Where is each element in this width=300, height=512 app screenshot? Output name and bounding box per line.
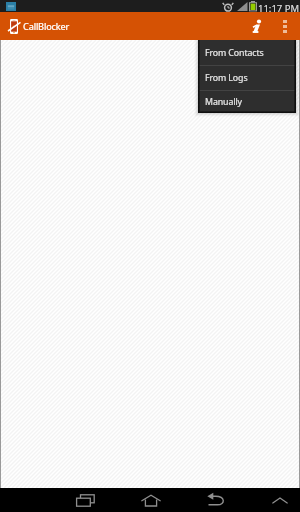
- staticText: From Logs: [205, 72, 248, 84]
- button[interactable]: More options: [276, 12, 294, 40]
- button[interactable]: Back: [195, 488, 236, 512]
- staticText: From Contacts: [205, 47, 264, 59]
- button[interactable]: From Contacts: [198, 40, 296, 65]
- staticText: CallBlocker: [23, 20, 70, 33]
- staticText: 11:17 PM: [258, 2, 300, 14]
- button[interactable]: Recents: [65, 488, 106, 512]
- button[interactable]: Info: [244, 12, 270, 40]
- button[interactable]: Manually: [198, 91, 296, 113]
- button[interactable]: Show keyboard: [260, 488, 300, 512]
- staticText: Manually: [205, 96, 242, 108]
- button[interactable]: Home: [130, 488, 171, 512]
- button[interactable]: From Logs: [198, 66, 296, 90]
